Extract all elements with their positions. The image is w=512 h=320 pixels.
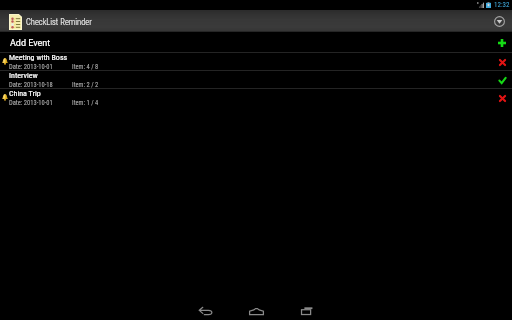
button[interactable]: Back <box>187 300 224 320</box>
button[interactable]: Meeting with Boss <box>0 53 512 71</box>
staticText: Add Event <box>10 38 51 49</box>
button[interactable]: Interview <box>0 71 512 89</box>
staticText: Date: 2013-10-01 <box>9 63 53 71</box>
staticText: Item: 2 / 2 <box>72 81 99 89</box>
staticText: Meeting with Boss <box>9 53 68 62</box>
staticText: Item: 1 / 4 <box>72 99 99 107</box>
button[interactable]: Delete <box>496 56 508 68</box>
staticText: Date: 2013-10-01 <box>9 99 53 107</box>
staticText: Date: 2013-10-18 <box>9 81 53 89</box>
staticText: China Trip <box>9 89 41 98</box>
staticText: Item: 4 / 8 <box>72 63 99 71</box>
button[interactable]: Add <box>496 37 508 49</box>
button[interactable]: China Trip <box>0 89 512 107</box>
button[interactable]: Recents <box>289 300 326 320</box>
button[interactable]: Completed <box>496 74 508 86</box>
staticText: Interview <box>9 71 38 80</box>
staticText: CheckList Reminder <box>26 17 92 27</box>
button[interactable]: More options <box>493 15 505 27</box>
button[interactable]: Home <box>238 300 275 320</box>
button[interactable]: Delete <box>496 92 508 104</box>
staticText: 12:32 <box>494 1 510 9</box>
button[interactable]: Add Event <box>0 32 512 53</box>
